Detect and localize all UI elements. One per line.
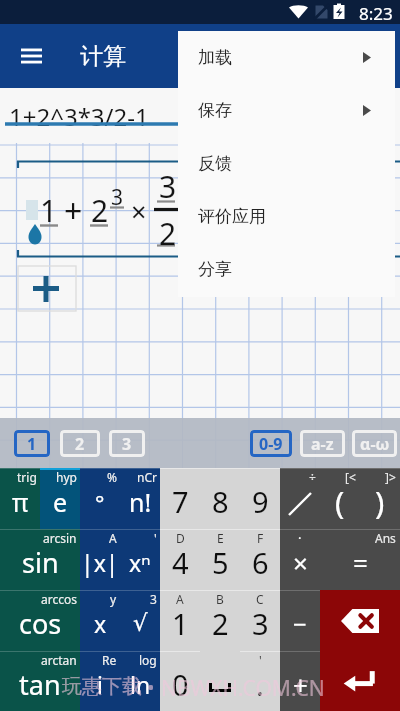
- staticText: 0: [172, 665, 189, 704]
- staticText: 6: [252, 543, 269, 582]
- button[interactable]: 加载: [178, 31, 395, 84]
- staticText: 5: [212, 543, 229, 582]
- staticText: .: [256, 665, 264, 704]
- staticText: log: [139, 652, 157, 668]
- staticText: 1: [40, 190, 58, 231]
- button[interactable]: Space: [200, 651, 240, 711]
- button[interactable]: nCr: [120, 468, 160, 529]
- staticText: ×: [131, 193, 147, 230]
- staticText: =: [353, 545, 368, 580]
- button[interactable]: 3: [109, 430, 145, 457]
- button[interactable]: %: [80, 468, 120, 529]
- staticText: |x|: [81, 547, 119, 578]
- button[interactable]: ]>: [360, 468, 400, 529]
- button[interactable]: y: [80, 590, 120, 651]
- staticText: 8: [212, 482, 229, 521]
- button[interactable]: α-ω: [352, 430, 397, 457]
- button[interactable]: F: [240, 529, 280, 590]
- staticText: 7: [172, 482, 189, 521]
- staticText: sin: [22, 544, 59, 581]
- staticText: ÷: [309, 469, 316, 485]
- staticText: 2: [159, 213, 177, 254]
- button[interactable]: Enter: [320, 651, 400, 711]
- staticText: A: [176, 591, 184, 607]
- staticText: 9: [252, 482, 269, 521]
- staticText: cos: [19, 605, 62, 642]
- staticText: nCr: [137, 469, 157, 485]
- staticText: y: [110, 591, 117, 607]
- button[interactable]: 0-9: [250, 430, 292, 457]
- button[interactable]: B: [200, 590, 240, 651]
- button[interactable]: E: [200, 529, 240, 590]
- staticText: NBWXH.COM.CN: [161, 674, 325, 703]
- button[interactable]: −: [280, 590, 320, 651]
- staticText: n!: [129, 485, 152, 519]
- button[interactable]: ': [120, 529, 160, 590]
- staticText: x: [94, 608, 107, 639]
- button[interactable]: ': [240, 651, 280, 711]
- staticText: ): [375, 481, 385, 523]
- button[interactable]: [<: [320, 468, 360, 529]
- staticText: 3: [122, 433, 132, 455]
- staticText: F: [257, 530, 264, 546]
- staticText: 计算: [80, 42, 126, 71]
- staticText: 分享: [198, 259, 232, 280]
- button[interactable]: trig: [0, 468, 40, 529]
- button[interactable]: a-z: [300, 430, 345, 457]
- staticText: ln: [130, 669, 151, 700]
- staticText: e: [53, 485, 68, 519]
- button[interactable]: Backspace: [320, 590, 400, 651]
- button[interactable]: 3: [120, 590, 160, 651]
- staticText: 加载: [198, 47, 232, 68]
- staticText: A: [109, 530, 117, 546]
- staticText: arcsin: [43, 530, 77, 546]
- button[interactable]: 8: [200, 468, 240, 529]
- button[interactable]: Open navigation drawer: [13, 38, 49, 74]
- button[interactable]: arcsin: [0, 529, 80, 590]
- staticText: 3: [159, 166, 177, 207]
- staticText: 3: [150, 591, 157, 607]
- button[interactable]: 反馈: [178, 137, 395, 190]
- staticText: hyp: [56, 469, 77, 485]
- staticText: 评价应用: [198, 206, 266, 227]
- button[interactable]: 分享: [178, 243, 395, 296]
- button[interactable]: 0: [160, 651, 200, 711]
- button[interactable]: 7: [160, 468, 200, 529]
- button[interactable]: Re: [80, 651, 120, 711]
- button[interactable]: D: [160, 529, 200, 590]
- staticText: 2: [75, 433, 85, 455]
- button[interactable]: arctan: [0, 651, 80, 711]
- button[interactable]: 2: [60, 430, 100, 457]
- staticText: 4: [172, 543, 189, 582]
- staticText: trig: [17, 469, 37, 485]
- button[interactable]: 保存: [178, 84, 395, 137]
- button[interactable]: A: [80, 529, 120, 590]
- button[interactable]: hyp: [40, 468, 80, 529]
- staticText: °: [95, 487, 105, 517]
- staticText: C: [256, 591, 264, 607]
- button[interactable]: ×: [280, 529, 320, 590]
- staticText: −: [293, 607, 307, 640]
- staticText: •: [147, 674, 155, 701]
- button[interactable]: 评价应用: [178, 190, 395, 243]
- button[interactable]: log: [120, 651, 160, 711]
- staticText: D: [176, 530, 185, 546]
- button[interactable]: +: [280, 651, 320, 711]
- staticText: Ans: [375, 530, 396, 546]
- button[interactable]: Ans: [320, 529, 400, 590]
- button[interactable]: 1: [14, 430, 50, 457]
- button[interactable]: C: [240, 590, 280, 651]
- staticText: (: [335, 481, 345, 523]
- staticText: 反馈: [198, 153, 232, 174]
- staticText: +: [64, 189, 83, 233]
- button[interactable]: ÷: [280, 468, 320, 529]
- button[interactable]: 9: [240, 468, 280, 529]
- button[interactable]: arccos: [0, 590, 80, 651]
- button[interactable]: A: [160, 590, 200, 651]
- staticText: 保存: [198, 100, 232, 121]
- staticText: +: [293, 667, 308, 702]
- staticText: 1+2^3*3/2-1: [9, 100, 149, 133]
- staticText: B: [216, 591, 224, 607]
- staticText: ×: [293, 545, 308, 580]
- staticText: α-ω: [360, 433, 390, 455]
